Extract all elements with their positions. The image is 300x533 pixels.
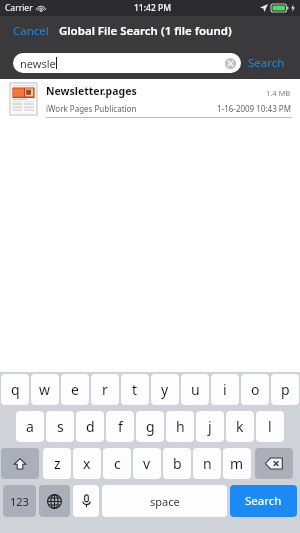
button[interactable]: Newsletter.pages — [0, 79, 300, 118]
staticText: j — [208, 417, 212, 436]
button[interactable]: j — [196, 411, 224, 442]
staticText: q — [11, 380, 20, 399]
button[interactable]: f — [106, 411, 134, 442]
staticText: p — [281, 380, 290, 399]
staticText: o — [251, 380, 260, 399]
staticText: Cancel — [13, 23, 49, 39]
button[interactable]: Dictate — [73, 485, 99, 517]
button[interactable]: h — [166, 411, 194, 442]
button[interactable]: o — [241, 374, 269, 405]
staticText: w — [39, 380, 51, 399]
staticText: x — [83, 454, 91, 473]
button[interactable]: l — [256, 411, 284, 442]
button[interactable]: i — [211, 374, 239, 405]
staticText: 1-16-2009 10:43 PM — [217, 103, 291, 114]
staticText: l — [268, 417, 272, 436]
staticText: g — [146, 417, 155, 436]
staticText: 1.4 MB — [266, 88, 291, 98]
staticText: i — [223, 380, 227, 399]
button[interactable]: Cancel — [11, 19, 51, 43]
button[interactable]: w — [31, 374, 59, 405]
staticText: u — [191, 380, 200, 399]
staticText: t — [132, 380, 138, 399]
button[interactable]: m — [223, 448, 251, 479]
button[interactable]: x — [73, 448, 101, 479]
button[interactable]: q — [1, 374, 29, 405]
staticText: b — [173, 454, 182, 473]
staticText: 11:42 PM — [134, 2, 171, 14]
staticText: c — [114, 454, 121, 473]
button[interactable]: e — [61, 374, 89, 405]
staticText: v — [143, 454, 151, 473]
staticText: f — [118, 417, 123, 436]
button[interactable]: Next keyboard — [39, 485, 70, 517]
staticText: Search — [248, 55, 285, 71]
button[interactable]: r — [91, 374, 119, 405]
staticText: Newsletter.pages — [46, 84, 137, 98]
staticText: newsle — [20, 56, 56, 71]
button[interactable]: newsle — [13, 53, 241, 73]
button[interactable]: Clear text — [225, 58, 236, 69]
staticText: d — [86, 417, 95, 436]
button[interactable]: s — [46, 411, 74, 442]
staticText: e — [71, 380, 79, 399]
staticText: Carrier — [5, 2, 33, 14]
staticText: k — [236, 417, 244, 436]
button[interactable]: z — [43, 448, 71, 479]
button[interactable]: c — [103, 448, 131, 479]
button[interactable]: b — [163, 448, 191, 479]
button[interactable]: space — [102, 485, 227, 517]
staticText: r — [102, 380, 108, 399]
button[interactable]: a — [16, 411, 44, 442]
staticText: z — [54, 454, 61, 473]
staticText: 123 — [10, 494, 29, 509]
staticText: Global File Search (1 file found) — [59, 23, 232, 39]
button[interactable]: d — [76, 411, 104, 442]
staticText: y — [161, 380, 169, 399]
button[interactable]: Backspace — [255, 448, 293, 479]
button[interactable]: n — [193, 448, 221, 479]
button[interactable]: Search — [230, 485, 297, 517]
button[interactable]: Shift — [1, 448, 39, 479]
button[interactable]: t — [121, 374, 149, 405]
staticText: s — [57, 417, 64, 436]
button[interactable]: p — [271, 374, 299, 405]
button[interactable]: v — [133, 448, 161, 479]
button[interactable]: y — [151, 374, 179, 405]
button[interactable]: u — [181, 374, 209, 405]
staticText: m — [230, 454, 244, 473]
button[interactable]: Search — [241, 51, 292, 75]
button[interactable]: k — [226, 411, 254, 442]
staticText: space — [150, 494, 180, 509]
staticText: iWork Pages Publication — [46, 103, 137, 114]
staticText: a — [26, 417, 34, 436]
button[interactable]: 123 — [3, 485, 36, 517]
button[interactable]: g — [136, 411, 164, 442]
staticText: n — [203, 454, 212, 473]
staticText: Search — [245, 493, 282, 509]
staticText: h — [176, 417, 185, 436]
